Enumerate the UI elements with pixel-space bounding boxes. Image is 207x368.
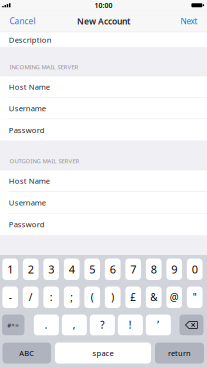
staticText: Next xyxy=(180,15,197,27)
button[interactable]: Password xyxy=(0,119,207,141)
staticText: Password xyxy=(9,125,45,135)
staticText: ABC xyxy=(19,348,34,358)
button[interactable]: Username xyxy=(0,98,207,119)
button[interactable]: , xyxy=(62,314,87,335)
button[interactable]: Host Name xyxy=(0,76,207,98)
button[interactable]: 7 xyxy=(125,258,141,280)
staticText: Username xyxy=(9,197,46,208)
button[interactable]: Username xyxy=(0,192,207,214)
button[interactable]: ) xyxy=(105,286,120,308)
staticText: 8 xyxy=(151,262,157,277)
button[interactable]: : xyxy=(43,286,59,308)
button[interactable]: 5 xyxy=(84,258,100,280)
staticText: 2 xyxy=(28,262,34,277)
button[interactable]: 8 xyxy=(146,258,161,280)
button[interactable]: 0 xyxy=(187,258,202,280)
button[interactable]: " xyxy=(187,286,202,308)
button[interactable]: £ xyxy=(125,286,141,308)
button[interactable]: Next xyxy=(173,10,207,32)
button[interactable]: Description xyxy=(0,32,207,47)
button[interactable]: 6 xyxy=(105,258,120,280)
staticText: ! xyxy=(129,318,132,332)
staticText: Description xyxy=(9,35,52,45)
button[interactable]: Host Name xyxy=(0,170,207,192)
button[interactable]: #+= xyxy=(2,314,24,335)
staticText: 10:00 xyxy=(94,0,112,10)
staticText: Username xyxy=(9,103,46,113)
staticText: 6 xyxy=(110,262,116,277)
staticText: 9 xyxy=(171,262,177,277)
button[interactable]: 2 xyxy=(23,258,38,280)
staticText: 4 xyxy=(69,262,75,277)
button[interactable]: - xyxy=(2,286,18,308)
staticText: 0 xyxy=(192,262,198,277)
staticText: 1 xyxy=(7,262,13,277)
staticText: : xyxy=(50,290,53,304)
button[interactable]: ? xyxy=(90,314,115,335)
staticText: 7 xyxy=(130,262,136,277)
button[interactable]: ; xyxy=(64,286,79,308)
staticText: 5 xyxy=(89,262,95,277)
button[interactable]: 1 xyxy=(2,258,18,280)
staticText: New Account xyxy=(77,15,130,27)
button[interactable]: Password xyxy=(0,214,207,235)
staticText: ’ xyxy=(157,318,159,332)
staticText: 3 xyxy=(48,262,54,277)
staticText: ? xyxy=(100,318,104,332)
staticText: Host Name xyxy=(9,82,50,92)
button[interactable]: / xyxy=(23,286,38,308)
button[interactable]: ! xyxy=(118,314,143,335)
staticText: / xyxy=(29,290,33,304)
button[interactable]: & xyxy=(146,286,161,308)
button[interactable]: ’ xyxy=(146,314,171,335)
staticText: space xyxy=(92,348,113,358)
button[interactable]: @ xyxy=(166,286,182,308)
staticText: OUTGOING MAIL SERVER xyxy=(9,157,79,165)
staticText: return xyxy=(168,348,191,358)
button[interactable]: 3 xyxy=(43,258,59,280)
button[interactable]: Delete xyxy=(179,314,203,335)
button[interactable]: space xyxy=(55,342,151,363)
button[interactable]: Cancel xyxy=(0,10,42,32)
staticText: , xyxy=(73,318,76,332)
staticText: INCOMING MAIL SERVER xyxy=(9,63,78,71)
staticText: Password xyxy=(9,219,45,230)
button[interactable]: 4 xyxy=(64,258,79,280)
button[interactable]: return xyxy=(155,342,204,363)
button[interactable]: ( xyxy=(84,286,100,308)
staticText: £ xyxy=(130,290,136,304)
button[interactable]: 9 xyxy=(166,258,182,280)
staticText: ; xyxy=(70,290,73,304)
staticText: - xyxy=(9,290,12,304)
button[interactable]: ABC xyxy=(2,342,51,363)
staticText: " xyxy=(193,290,197,304)
staticText: ) xyxy=(111,290,114,304)
staticText: Cancel xyxy=(9,15,35,27)
staticText: @ xyxy=(170,290,179,304)
button[interactable]: . xyxy=(34,314,59,335)
staticText: ( xyxy=(91,290,94,304)
staticText: Host Name xyxy=(9,176,50,186)
staticText: . xyxy=(45,318,48,332)
staticText: & xyxy=(150,290,157,304)
staticText: #+= xyxy=(7,321,19,329)
